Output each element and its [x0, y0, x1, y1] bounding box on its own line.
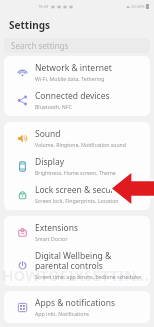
staticText: Network & internet — [35, 62, 112, 74]
staticText: Wi-Fi, Mobile data, Tethering — [35, 75, 105, 82]
button[interactable]: Digital Wellbeing & parental controls — [4, 246, 150, 284]
button[interactable]: Search settings — [4, 38, 150, 53]
button[interactable]: Display — [4, 152, 150, 180]
staticText: Sound — [35, 128, 61, 140]
staticText: Digital Wellbeing & parental controls — [35, 250, 144, 272]
staticText: Brightness, Home screen, Theme — [35, 169, 116, 176]
staticText: Extensions — [35, 222, 79, 234]
staticText: Screen time, app timers, bedtime schedul… — [35, 273, 142, 280]
staticText: 23:30% — [131, 4, 145, 9]
staticText: Settings — [9, 18, 50, 32]
button[interactable]: Lock screen & security — [4, 180, 150, 208]
staticText: Smart Doctor — [35, 235, 68, 242]
staticText: App info, Notifications — [35, 310, 90, 317]
button[interactable]: Sound — [4, 124, 150, 152]
staticText: Apps & notifications — [35, 297, 115, 309]
staticText: Lock screen & security — [35, 184, 124, 196]
staticText: Search settings — [11, 40, 69, 51]
staticText: 18:39 — [38, 4, 49, 9]
staticText: Bluetooth, NFC — [35, 103, 72, 110]
button[interactable]: Apps & notifications — [4, 293, 150, 321]
button[interactable]: Connected devices — [4, 86, 150, 114]
other: Pointer arrow — [0, 0, 154, 327]
staticText: Display — [35, 156, 64, 168]
button[interactable]: Network & internet — [4, 58, 150, 86]
staticText: Volume, Ringtone, Notification sound — [35, 141, 126, 148]
button[interactable]: Extensions — [4, 218, 150, 246]
staticText: HOWTOFIXSETTINGS — [2, 265, 154, 285]
staticText: Screen lock, Fingerprints, Location — [35, 197, 119, 204]
staticText: Connected devices — [35, 90, 110, 102]
